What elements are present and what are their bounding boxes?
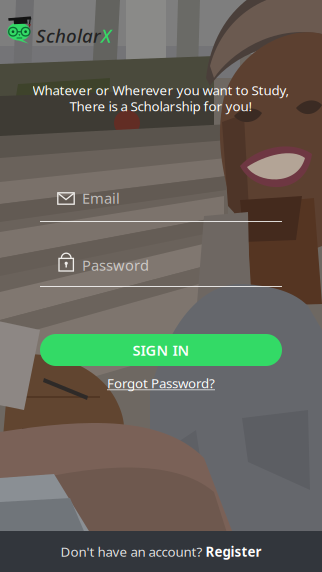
staticText: Forgot Password? (107, 374, 215, 392)
staticText: Don't have an account? (60, 543, 202, 560)
staticText: There is a Scholarship for you! (69, 97, 252, 115)
staticText: Whatever or Wherever you want to Study, (32, 81, 289, 99)
button[interactable]: SIGN IN (40, 334, 282, 366)
staticText: Scholar (36, 23, 101, 48)
staticText: X (101, 23, 111, 48)
staticText: Email (82, 188, 120, 208)
button[interactable]: Don't have an account? (0, 531, 322, 572)
staticText: Register (205, 543, 261, 560)
staticText: SIGN IN (132, 340, 189, 360)
staticText: Password (82, 255, 149, 275)
button[interactable]: Forgot Password? (0, 375, 322, 391)
